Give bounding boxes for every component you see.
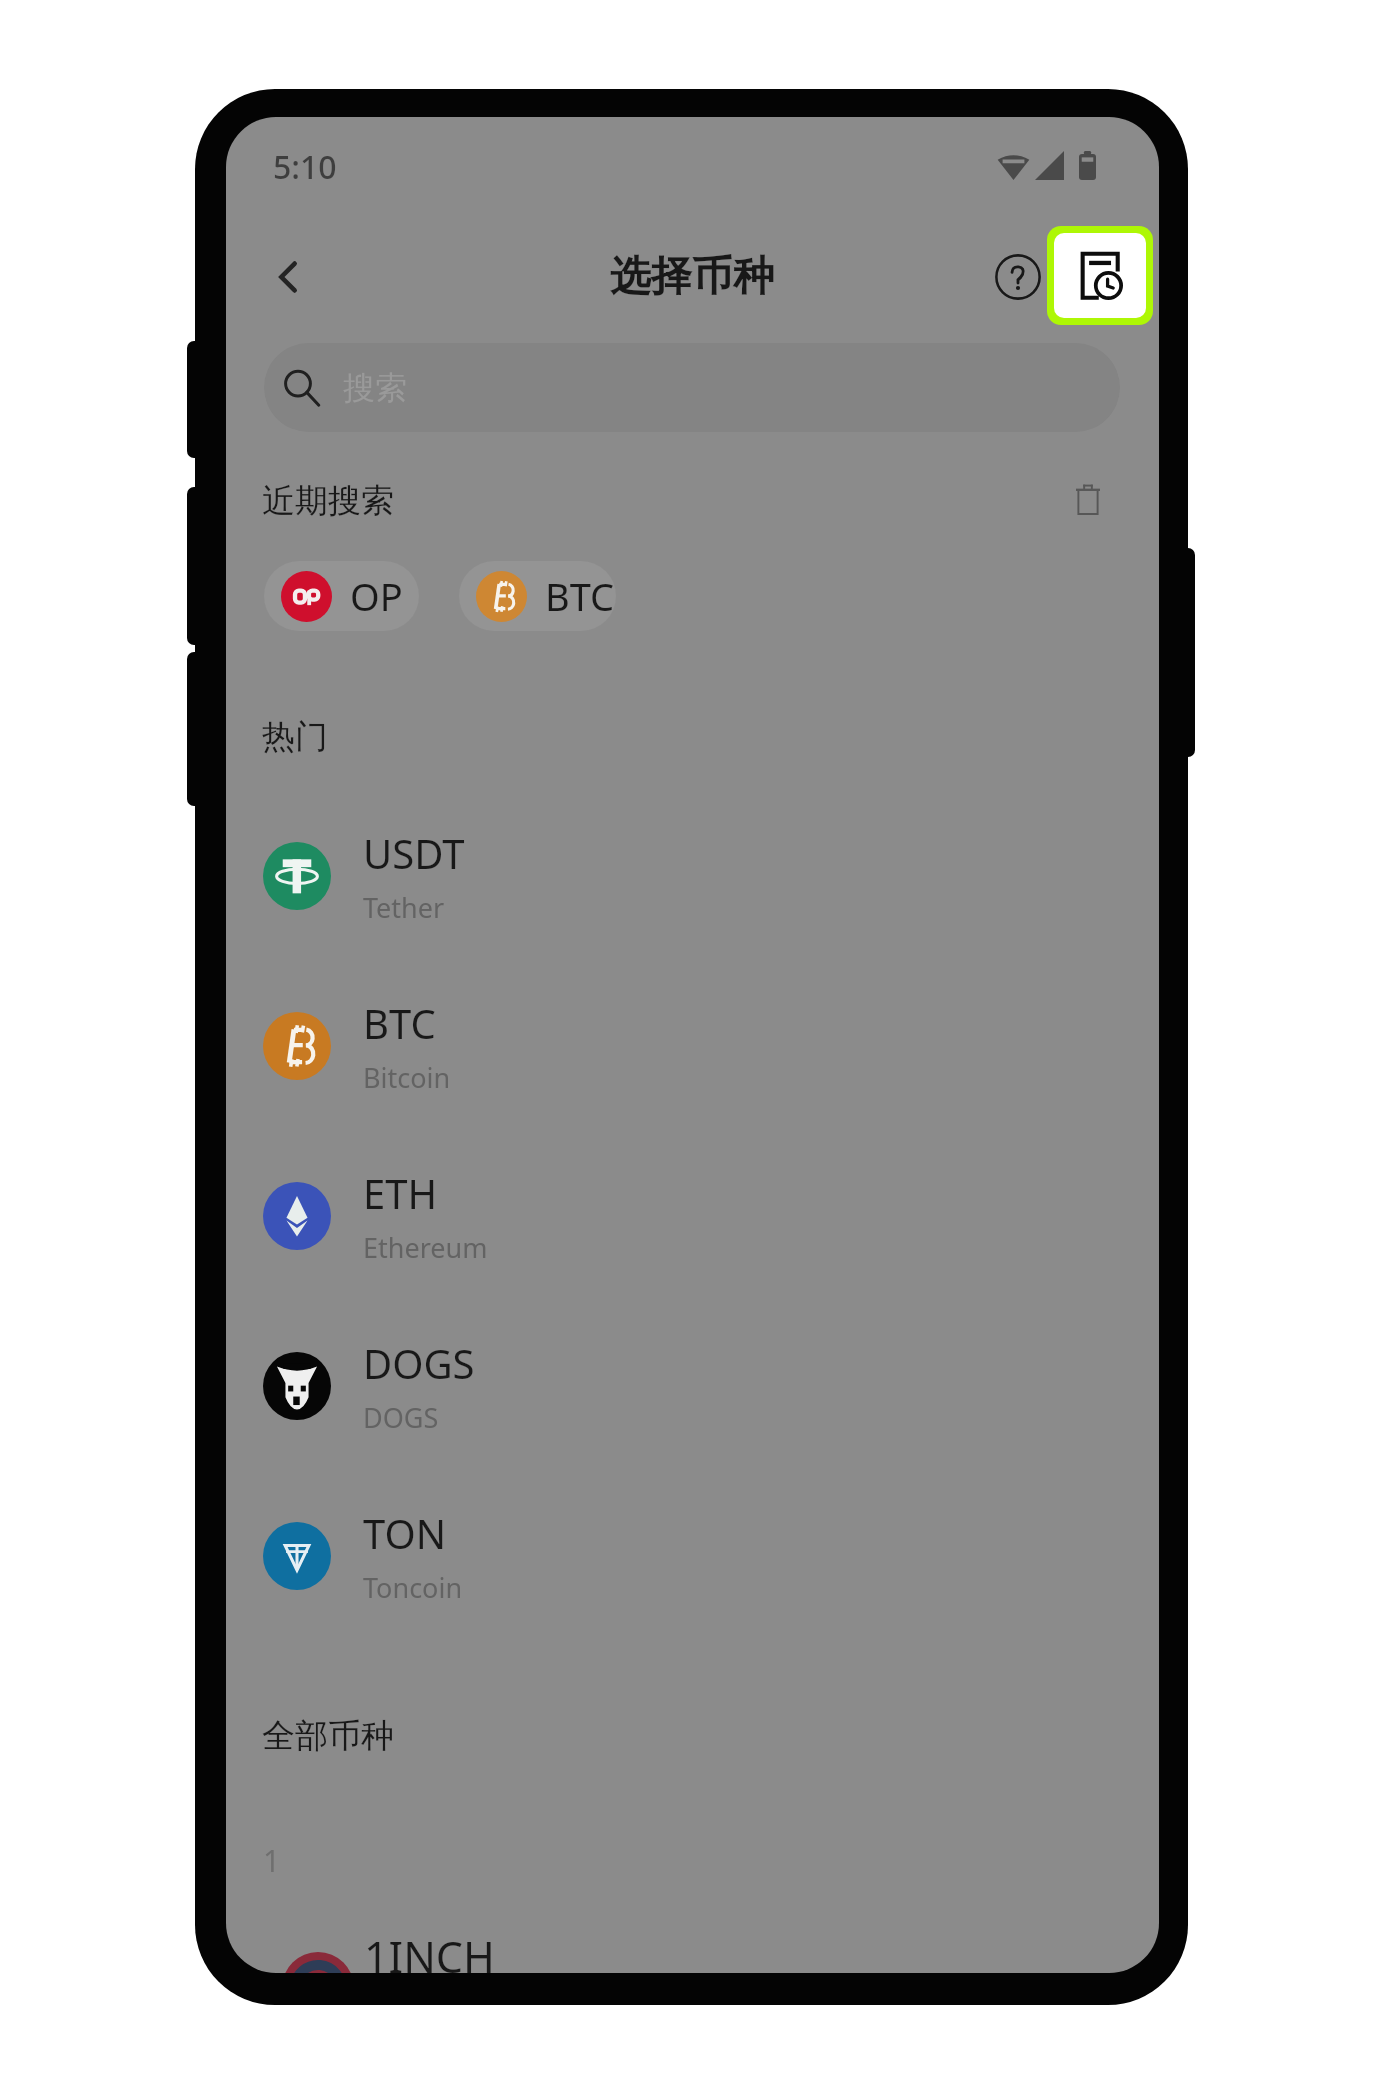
staticText: Ethereum bbox=[363, 1229, 488, 1266]
button[interactable]: Back bbox=[250, 239, 326, 315]
button[interactable]: ETH bbox=[226, 1131, 1159, 1301]
staticText: 热门 bbox=[262, 716, 328, 758]
staticText: 全部币种 bbox=[262, 1715, 394, 1757]
button[interactable]: Help bbox=[982, 241, 1054, 313]
staticText: 5:10 bbox=[273, 145, 337, 189]
staticText: 近期搜索 bbox=[262, 480, 394, 522]
staticText: 1 bbox=[263, 1840, 281, 1881]
staticText: DOGS bbox=[363, 1336, 475, 1390]
button[interactable]: 1INCH bbox=[226, 1912, 1159, 1973]
button[interactable]: Order history bbox=[1054, 233, 1146, 318]
staticText: TON bbox=[363, 1506, 447, 1560]
button[interactable]: OP bbox=[264, 561, 419, 631]
staticText: ETH bbox=[363, 1166, 438, 1220]
button[interactable]: TON bbox=[226, 1471, 1159, 1641]
button[interactable]: DOGS bbox=[226, 1301, 1159, 1471]
staticText: 搜索 bbox=[343, 368, 407, 408]
staticText: BTC bbox=[545, 570, 615, 622]
staticText: OP bbox=[350, 570, 403, 622]
button[interactable]: Clear recent searches bbox=[1058, 469, 1118, 529]
staticText: DOGS bbox=[363, 1399, 439, 1436]
staticText: Tether bbox=[363, 889, 445, 926]
staticText: 选择币种 bbox=[610, 251, 774, 303]
staticText: USDT bbox=[363, 826, 465, 880]
staticText: 1INCH bbox=[364, 1927, 495, 1973]
button[interactable]: BTC bbox=[226, 961, 1159, 1131]
staticText: Toncoin bbox=[363, 1569, 463, 1606]
button[interactable]: BTC bbox=[459, 561, 616, 631]
staticText: BTC bbox=[363, 996, 436, 1050]
button[interactable]: 搜索 bbox=[264, 343, 1120, 432]
staticText: Bitcoin bbox=[363, 1059, 451, 1096]
button[interactable]: USDT bbox=[226, 791, 1159, 961]
